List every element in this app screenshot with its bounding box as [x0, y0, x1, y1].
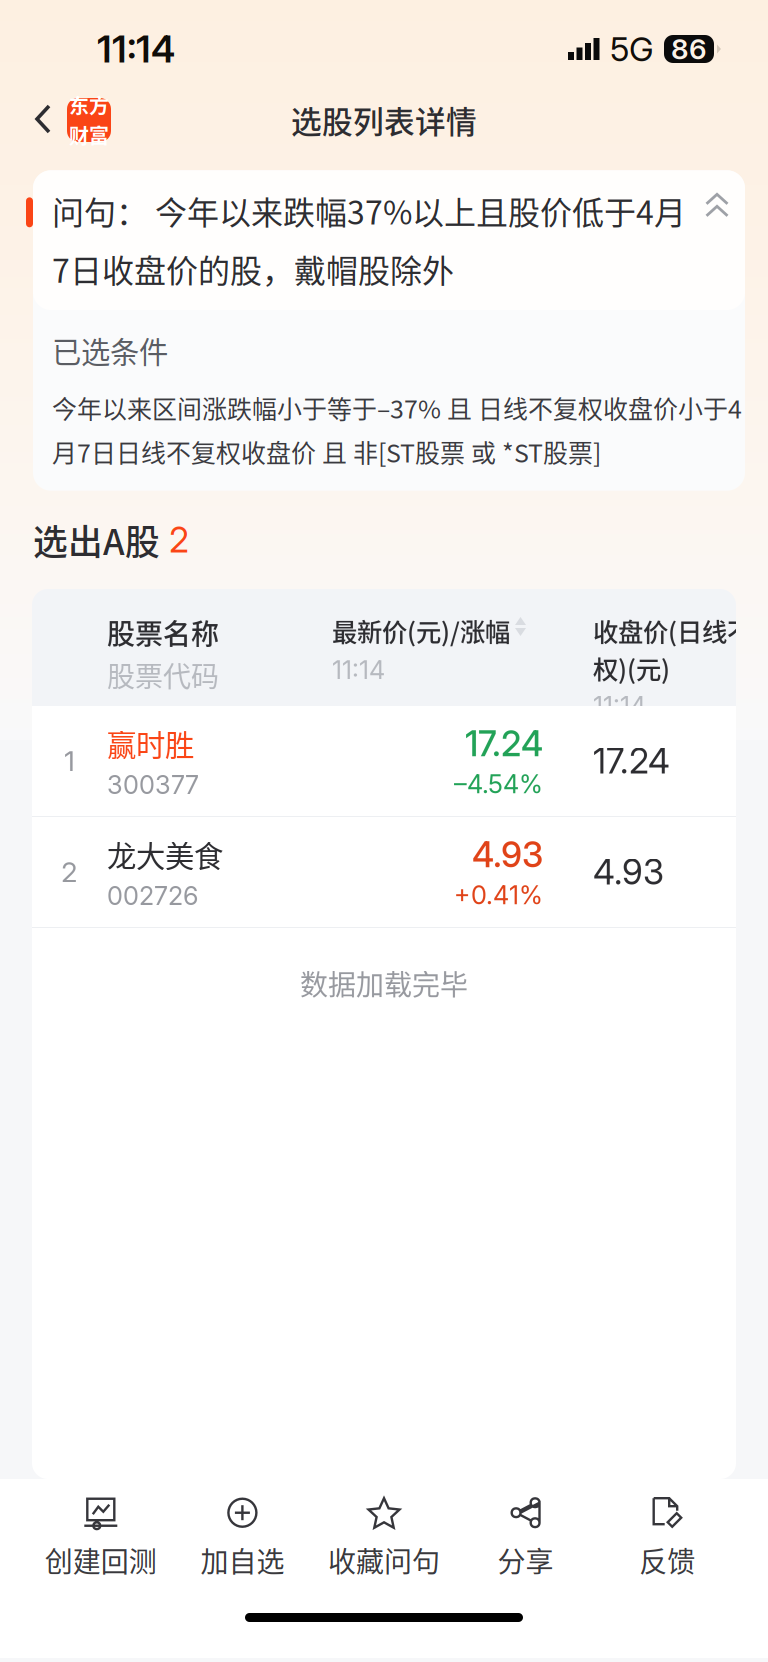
staticText: 收盘价(日线不	[593, 612, 752, 649]
staticText: 问句： 今年以来跌幅37%以上且股价低于4月	[52, 187, 686, 234]
staticText: 选出A股	[33, 515, 160, 565]
button[interactable]: 返回	[20, 88, 66, 152]
staticText: 数据加载完毕	[300, 963, 468, 1003]
staticText: 最新价(元)/涨幅	[332, 612, 510, 649]
staticText: 11:14	[97, 26, 175, 72]
staticText: 2	[61, 855, 78, 889]
staticText: –4.54%	[454, 769, 543, 799]
staticText: 1	[64, 744, 75, 778]
button[interactable]: 1	[32, 706, 736, 816]
staticText: 300377	[107, 769, 199, 800]
staticText: 17.24	[593, 740, 670, 782]
staticText: 反馈	[639, 1540, 695, 1580]
button[interactable]: 创建回测	[30, 1476, 172, 1592]
staticText: 4.93	[472, 834, 543, 876]
staticText: 已选条件	[52, 329, 168, 371]
button[interactable]: 收起	[689, 170, 745, 240]
button[interactable]: 分享	[455, 1476, 596, 1592]
staticText: 龙大美食	[107, 833, 223, 875]
staticText: 东方	[69, 90, 109, 119]
staticText: 5G	[610, 29, 654, 69]
staticText: 财富	[69, 120, 109, 149]
staticText: 11:14	[332, 655, 385, 685]
staticText: 17.24	[465, 723, 543, 765]
staticText: 今年以来区间涨跌幅小于等于–37% 且 日线不复权收盘价小于4	[52, 389, 742, 426]
staticText: 股票名称	[107, 612, 219, 652]
staticText: 赢时胜	[107, 722, 194, 764]
button[interactable]: 加自选	[172, 1476, 313, 1592]
staticText: 权)(元)	[593, 650, 670, 686]
staticText: 2	[169, 519, 189, 561]
staticText: 11:14	[593, 690, 646, 721]
staticText: 4.93	[593, 851, 664, 893]
button[interactable]: 东方财富	[66, 98, 111, 142]
staticText: 分享	[498, 1540, 554, 1580]
staticText: 86	[671, 32, 707, 66]
button[interactable]: 收藏问句	[313, 1476, 455, 1592]
staticText: 选股列表详情	[291, 98, 477, 142]
staticText: 创建回测	[45, 1540, 157, 1580]
staticText: 7日收盘价的股，戴帽股除外	[52, 246, 454, 292]
staticText: +0.41%	[454, 880, 543, 910]
staticText: 加自选	[200, 1540, 284, 1580]
staticText: 月7日日线不复权收盘价 且 非[ST股票 或 *ST股票]	[52, 434, 601, 470]
staticText: 收藏问句	[328, 1540, 440, 1580]
button[interactable]: 反馈	[596, 1476, 738, 1592]
button[interactable]: 2	[32, 817, 736, 927]
staticText: 股票代码	[107, 654, 219, 695]
staticText: 002726	[107, 880, 198, 911]
